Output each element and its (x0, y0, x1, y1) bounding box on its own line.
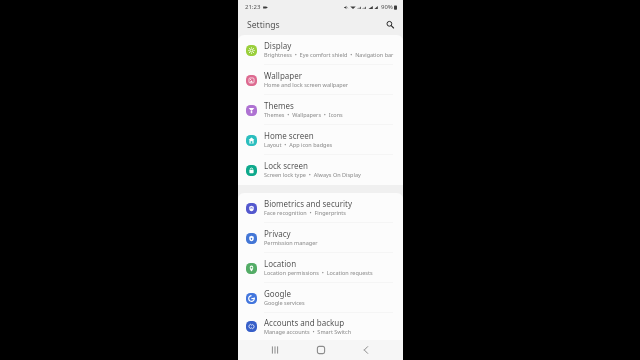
staticText: Google services (264, 299, 305, 306)
button[interactable]: Recent apps (266, 341, 284, 359)
button[interactable]: Display (238, 35, 403, 65)
staticText: Lock screen (264, 160, 309, 171)
button[interactable]: Back (357, 341, 375, 359)
button[interactable]: Home screen (238, 125, 403, 155)
staticText: Biometrics and security (264, 198, 352, 209)
staticText: Display (264, 40, 292, 51)
button[interactable]: Google (238, 283, 403, 313)
staticText: Themes • Wallpapers • Icons (264, 111, 343, 118)
staticText: Location (264, 258, 297, 269)
button[interactable]: Privacy (238, 223, 403, 253)
button[interactable]: Location (238, 253, 403, 283)
staticText: 90% (381, 3, 393, 11)
staticText: Brightness • Eye comfort shield • Naviga… (264, 51, 394, 58)
staticText: Manage accounts • Smart Switch (264, 328, 352, 335)
staticText: Wallpaper (264, 70, 303, 81)
staticText: Home and lock screen wallpaper (264, 81, 349, 88)
staticText: Layout • App icon badges (264, 141, 333, 148)
staticText: Face recognition • Fingerprints (264, 209, 346, 216)
button[interactable]: Home (312, 341, 330, 359)
staticText: Screen lock type • Always On Display (264, 171, 361, 178)
staticText: Settings (247, 19, 280, 31)
button[interactable]: Accounts and backup (238, 313, 403, 340)
button[interactable]: Themes (238, 95, 403, 125)
staticText: Privacy (264, 228, 291, 239)
staticText: Accounts and backup (264, 317, 345, 328)
button[interactable]: Lock screen (238, 155, 403, 185)
staticText: Permission manager (264, 239, 318, 246)
button[interactable]: Wallpaper (238, 65, 403, 95)
staticText: Location permissions • Location requests (264, 269, 373, 276)
staticText: Themes (264, 100, 294, 111)
button[interactable]: Biometrics and security (238, 193, 403, 223)
staticText: 21:23 (245, 3, 261, 11)
staticText: Google (264, 288, 291, 299)
staticText: Home screen (264, 130, 314, 141)
button[interactable]: Search (383, 18, 397, 32)
